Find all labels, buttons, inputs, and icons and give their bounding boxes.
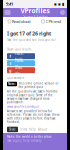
staticText: This is the online version of the printe…: [18, 82, 58, 89]
staticText: About: [38, 128, 47, 131]
staticText: Take the quiz and see how you do!: [7, 38, 56, 42]
staticText: VProfiles: [20, 6, 49, 15]
staticText: Share your results: [7, 48, 31, 51]
button[interactable]: Terms: [20, 128, 27, 131]
button[interactable]: CPfriend: [35, 17, 67, 26]
staticText: ▪ ▪ ▮: [54, 2, 64, 6]
staticText: Take a quiz, help a charity: [7, 139, 41, 142]
staticText: Make the world a better place: [7, 135, 52, 138]
staticText: Help: [29, 128, 36, 131]
staticText: Note:: [8, 82, 16, 86]
staticText: Answers are provided below for reference…: [7, 109, 60, 124]
staticText: I got 17 of 26 right: [7, 30, 51, 37]
staticText: Share: [9, 128, 16, 131]
staticText: t: [9, 60, 11, 66]
staticText: Quizzes & Profiles: [22, 15, 47, 19]
button[interactable]: About: [38, 128, 47, 131]
staticText: Twitter: [14, 58, 23, 68]
staticText: 9:41: [6, 1, 13, 7]
staticText: Quiz answers: [7, 76, 24, 80]
staticText: Read aloud: [12, 19, 30, 24]
button[interactable]: Search: [58, 8, 67, 16]
staticText: g: [9, 67, 12, 73]
button[interactable]: Share: [7, 127, 18, 132]
staticText: www.vprofiles.com/quiz: [7, 105, 39, 108]
staticText: All the questions are taken from the ori…: [7, 90, 58, 104]
staticText: f: [9, 53, 11, 59]
staticText: Facebook: [14, 51, 23, 61]
staticText: Google: [14, 65, 22, 75]
staticText: CPfriend: [45, 19, 60, 24]
button[interactable]: f: [7, 53, 35, 59]
button[interactable]: t: [7, 60, 35, 66]
staticText: Terms: [20, 128, 27, 131]
button[interactable]: Menu: [3, 8, 12, 16]
button[interactable]: Help: [29, 128, 36, 131]
button[interactable]: Read aloud: [3, 17, 35, 26]
button[interactable]: g: [7, 67, 35, 73]
